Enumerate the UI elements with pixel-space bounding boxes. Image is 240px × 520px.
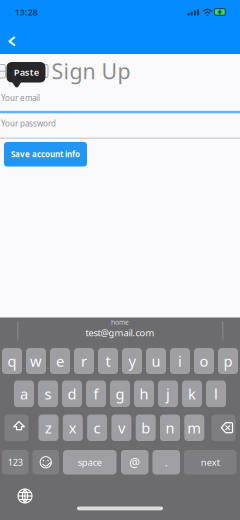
staticText: h xyxy=(139,384,148,403)
button[interactable]: t xyxy=(98,348,118,374)
staticText: . xyxy=(165,455,168,469)
button[interactable]: w xyxy=(26,348,46,374)
button[interactable]: n xyxy=(160,414,180,441)
staticText: 13:28 xyxy=(14,6,37,18)
staticText: e xyxy=(56,351,64,371)
staticText: Save account info xyxy=(11,149,80,159)
staticText: c xyxy=(94,418,101,437)
button[interactable]: x xyxy=(63,414,83,441)
button[interactable]: j xyxy=(158,380,178,407)
button[interactable]: f xyxy=(86,380,106,407)
button[interactable]: @ xyxy=(121,450,148,474)
button[interactable]: Next keyboard xyxy=(15,486,35,506)
button[interactable]: k xyxy=(182,380,202,407)
button[interactable]: d xyxy=(62,380,82,407)
staticText: w xyxy=(30,351,42,371)
staticText: r xyxy=(81,351,87,371)
staticText: p xyxy=(223,351,232,371)
staticText: u xyxy=(151,351,160,371)
button[interactable]: z xyxy=(38,414,58,441)
button[interactable]: i xyxy=(170,348,190,374)
button[interactable]: Your email xyxy=(0,92,240,113)
staticText: n xyxy=(165,418,174,437)
staticText: m xyxy=(187,418,201,437)
staticText: Paste xyxy=(14,66,39,78)
staticText: l xyxy=(214,384,218,403)
button[interactable]: b xyxy=(136,414,156,441)
button[interactable]: l xyxy=(206,380,226,407)
staticText: a xyxy=(20,384,28,403)
staticText: @ xyxy=(129,454,140,470)
button[interactable]: Emoji xyxy=(32,450,59,474)
button[interactable]: 123 xyxy=(2,450,28,474)
staticText: b xyxy=(141,418,150,437)
button[interactable]: o xyxy=(194,348,214,374)
staticText: o xyxy=(199,351,208,371)
staticText: y xyxy=(128,351,135,371)
button[interactable]: q xyxy=(2,348,22,374)
button[interactable]: . xyxy=(152,450,180,474)
button[interactable]: home xyxy=(20,317,220,339)
staticText: t xyxy=(105,351,110,371)
staticText: s xyxy=(44,384,51,403)
button[interactable]: p xyxy=(218,348,238,374)
button[interactable]: g xyxy=(110,380,130,407)
staticText: test@gmail.com xyxy=(85,326,154,339)
button[interactable]: h xyxy=(134,380,154,407)
button[interactable]: r xyxy=(74,348,94,374)
button[interactable]: Paste xyxy=(0,0,240,520)
staticText: g xyxy=(115,384,124,403)
staticText: f xyxy=(93,384,98,403)
button[interactable]: Your password xyxy=(0,117,240,139)
staticText: x xyxy=(69,418,77,437)
button[interactable]: c xyxy=(87,414,107,441)
button[interactable]: a xyxy=(14,380,34,407)
staticText: Sign Up xyxy=(51,57,130,85)
staticText: j xyxy=(166,384,170,403)
staticText: Your password xyxy=(1,118,56,129)
staticText: d xyxy=(67,384,76,403)
button[interactable]: Save account info xyxy=(4,142,87,166)
button[interactable]: e xyxy=(50,348,70,374)
staticText: v xyxy=(118,418,125,437)
staticText: q xyxy=(7,351,16,371)
button[interactable]: u xyxy=(146,348,166,374)
button[interactable]: Back xyxy=(0,33,22,49)
button[interactable]: m xyxy=(184,414,204,441)
button[interactable]: Shift xyxy=(4,414,28,441)
button[interactable]: space xyxy=(63,450,116,474)
staticText: space xyxy=(78,456,102,468)
button[interactable]: y xyxy=(122,348,142,374)
staticText: z xyxy=(45,418,52,437)
staticText: Your email xyxy=(1,92,40,103)
staticText: next xyxy=(201,456,220,468)
button[interactable]: v xyxy=(111,414,131,441)
button[interactable]: Delete xyxy=(211,414,235,441)
staticText: home xyxy=(111,318,129,327)
button[interactable]: s xyxy=(38,380,58,407)
staticText: 123 xyxy=(8,456,23,468)
staticText: i xyxy=(178,351,182,371)
staticText: k xyxy=(188,384,196,403)
button[interactable]: next xyxy=(184,450,236,474)
